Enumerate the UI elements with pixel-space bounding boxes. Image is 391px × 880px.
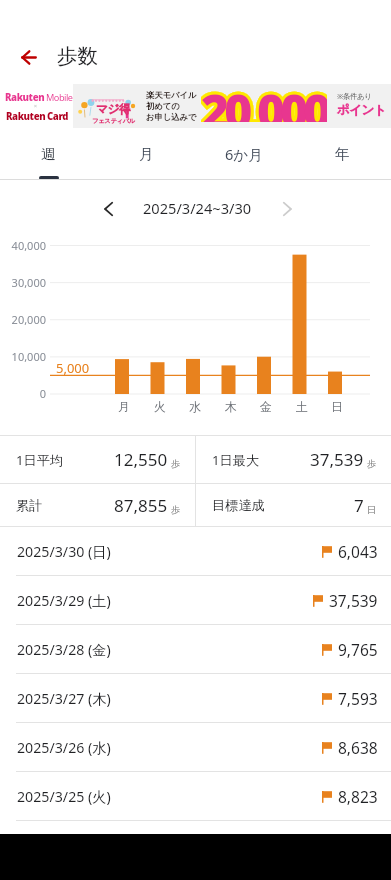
- staticText: 6,043: [338, 541, 378, 562]
- staticText: 37,539: [329, 590, 378, 611]
- staticText: Rakuten: [6, 110, 46, 123]
- staticText: 年: [335, 145, 350, 163]
- staticText: 12,550: [114, 448, 168, 471]
- staticText: 土: [296, 399, 308, 414]
- staticText: 金: [260, 399, 272, 414]
- staticText: 楽天モバイル: [146, 90, 197, 100]
- staticText: 1日最大: [212, 451, 260, 469]
- staticText: 日: [331, 399, 343, 414]
- staticText: 初めての: [146, 101, 180, 111]
- staticText: 2025/3/30 (日): [17, 542, 111, 561]
- button[interactable]: Next week: [269, 191, 305, 227]
- staticText: 20,000: [201, 78, 327, 122]
- staticText: 月: [118, 399, 130, 414]
- staticText: 6か月: [225, 144, 263, 164]
- staticText: 週: [41, 145, 56, 163]
- staticText: 20,000: [11, 312, 46, 327]
- staticText: 7,593: [338, 688, 378, 709]
- staticText: 40,000: [11, 238, 46, 253]
- staticText: 7: [354, 494, 364, 517]
- button[interactable]: Advertisement: [0, 84, 391, 128]
- staticText: 木: [225, 399, 237, 414]
- staticText: Rakuten: [5, 91, 45, 104]
- button[interactable]: 2025/3/26 (水): [0, 723, 391, 772]
- staticText: 8,823: [338, 786, 378, 807]
- button[interactable]: 2025/3/25 (火): [0, 772, 391, 821]
- staticText: フェスティバル: [92, 117, 135, 125]
- staticText: お申し込みで: [146, 112, 197, 122]
- button[interactable]: 週: [0, 128, 97, 180]
- staticText: 9,765: [338, 639, 378, 660]
- staticText: 月: [139, 145, 154, 163]
- button[interactable]: 6か月: [195, 128, 293, 180]
- staticText: 5,000: [56, 359, 90, 377]
- staticText: 2025/3/27 (木): [17, 689, 111, 708]
- staticText: 10,000: [11, 349, 46, 364]
- button[interactable]: 2025/3/30 (日): [0, 527, 391, 576]
- staticText: 歩: [367, 458, 377, 470]
- staticText: 20,000: [201, 78, 327, 122]
- staticText: 歩数: [57, 43, 98, 69]
- staticText: 8,638: [338, 737, 378, 758]
- staticText: 歩: [171, 504, 181, 516]
- staticText: 目標達成: [212, 497, 265, 514]
- staticText: ※条件あり: [337, 91, 372, 101]
- staticText: 2025/3/26 (水): [17, 738, 111, 757]
- staticText: Mobile: [46, 91, 73, 104]
- staticText: ポイント: [337, 102, 386, 118]
- staticText: 37,539: [310, 448, 364, 471]
- staticText: 2025/3/29 (土): [17, 591, 111, 610]
- button[interactable]: Back: [10, 38, 48, 76]
- button[interactable]: 2025/3/29 (土): [0, 576, 391, 625]
- staticText: 水: [189, 399, 201, 414]
- staticText: ×: [34, 103, 37, 110]
- staticText: 0: [39, 386, 46, 401]
- button[interactable]: 2025/3/27 (木): [0, 674, 391, 723]
- staticText: Card: [47, 110, 69, 123]
- staticText: 1日平均: [16, 451, 64, 469]
- button[interactable]: Previous week: [90, 191, 126, 227]
- button[interactable]: 年: [293, 128, 391, 180]
- staticText: マジ得: [96, 102, 131, 117]
- staticText: 火: [154, 399, 166, 414]
- staticText: 歩: [171, 458, 181, 470]
- staticText: 30,000: [11, 275, 46, 290]
- staticText: 2025/3/24~3/30: [143, 198, 252, 218]
- button[interactable]: 2025/3/28 (金): [0, 625, 391, 674]
- button[interactable]: 月: [97, 128, 195, 180]
- staticText: 2025/3/28 (金): [17, 640, 111, 659]
- staticText: 日: [367, 504, 377, 516]
- staticText: 累計: [16, 497, 43, 514]
- staticText: 2025/3/25 (火): [17, 787, 111, 806]
- staticText: 87,855: [114, 494, 168, 517]
